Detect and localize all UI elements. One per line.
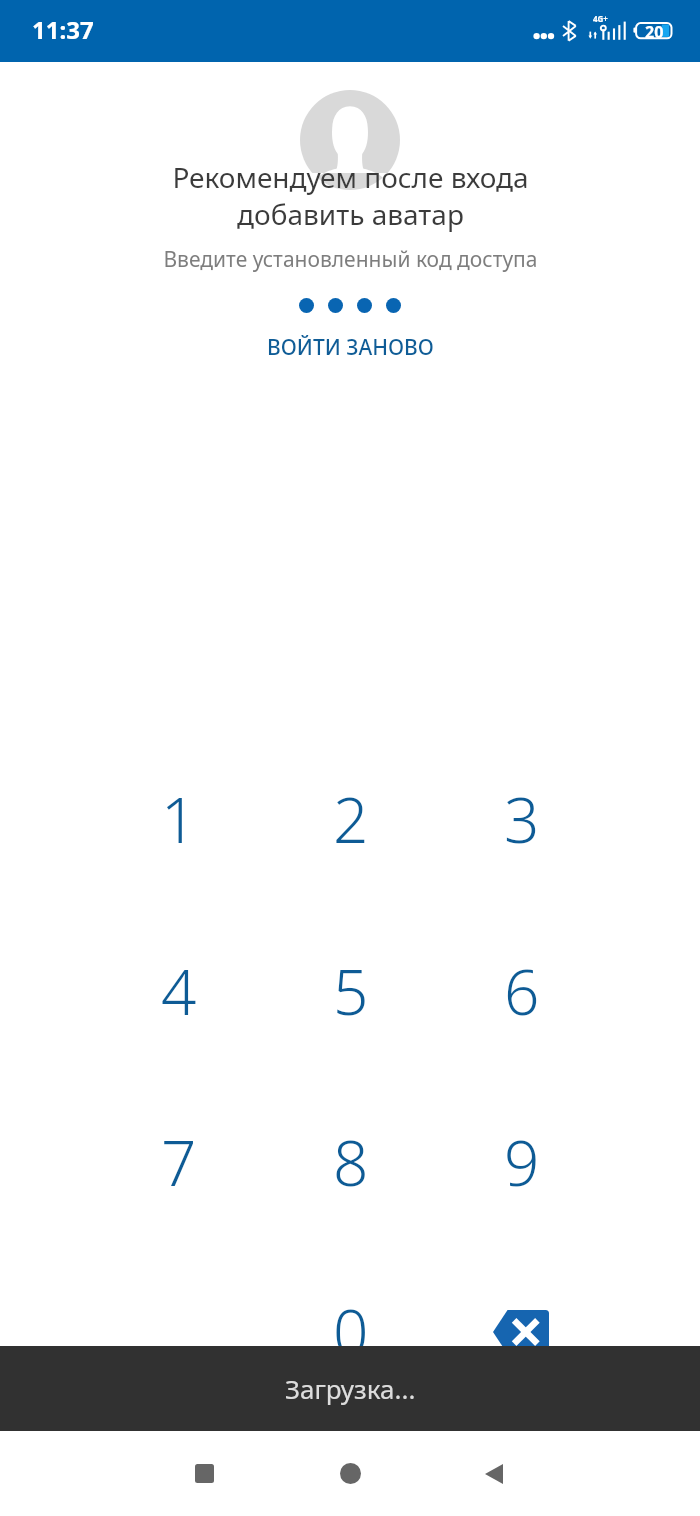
staticText: 9 bbox=[504, 1120, 540, 1204]
staticText: 5 bbox=[333, 949, 369, 1033]
button[interactable]: 5 bbox=[291, 941, 411, 1041]
button[interactable]: 6 bbox=[462, 941, 582, 1041]
staticText: Введите установленный код доступа bbox=[163, 245, 538, 274]
button[interactable]: 3 bbox=[462, 769, 582, 869]
staticText: Рекомендуем после входа добавить аватар bbox=[172, 158, 529, 233]
button[interactable]: Обзор bbox=[154, 1431, 254, 1516]
button[interactable]: Удалить bbox=[461, 1282, 581, 1382]
staticText: ВОЙТИ ЗАНОВО bbox=[267, 333, 434, 362]
staticText: 3 bbox=[504, 777, 540, 861]
button[interactable]: ВОЙТИ ЗАНОВО bbox=[249, 325, 452, 370]
staticText: 6 bbox=[504, 949, 540, 1033]
button[interactable]: 2 bbox=[291, 769, 411, 869]
staticText: 4 bbox=[161, 949, 197, 1033]
button[interactable]: 1 bbox=[119, 769, 239, 869]
staticText: 8 bbox=[333, 1120, 369, 1204]
button[interactable]: 7 bbox=[119, 1112, 239, 1212]
staticText: 2 bbox=[333, 777, 369, 861]
staticText: 20 bbox=[645, 21, 664, 43]
button[interactable]: 4 bbox=[119, 941, 239, 1041]
staticText: 0 bbox=[333, 1289, 369, 1373]
button[interactable]: 9 bbox=[462, 1112, 582, 1212]
staticText: 11:37 bbox=[32, 13, 94, 46]
staticText: 1 bbox=[161, 777, 197, 861]
staticText: Загрузка... bbox=[285, 1371, 416, 1406]
button[interactable]: 0 bbox=[291, 1281, 411, 1381]
button[interactable]: 8 bbox=[291, 1112, 411, 1212]
staticText: 7 bbox=[161, 1120, 197, 1204]
staticText: 4G+ bbox=[593, 13, 608, 24]
button[interactable]: Назад bbox=[444, 1431, 544, 1516]
button[interactable]: Домой bbox=[300, 1431, 400, 1516]
